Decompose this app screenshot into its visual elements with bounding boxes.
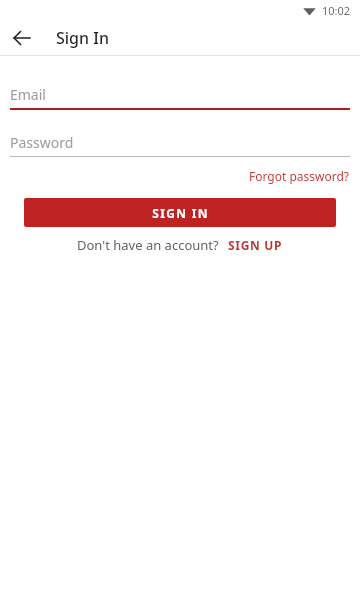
staticText: Password <box>10 133 74 152</box>
button[interactable]: Back <box>0 20 44 55</box>
button[interactable]: Forgot password? <box>239 166 360 186</box>
button[interactable]: SIGN IN <box>24 198 336 227</box>
staticText: SIGN IN <box>152 205 209 221</box>
button[interactable]: SIGN UP <box>228 237 283 253</box>
staticText: Forgot password? <box>249 168 350 184</box>
staticText: SIGN UP <box>228 237 283 253</box>
staticText: 10:02 <box>322 3 351 18</box>
staticText: Sign In <box>56 27 109 49</box>
staticText: Email <box>10 85 46 104</box>
staticText: Don't have an account? <box>77 236 219 254</box>
